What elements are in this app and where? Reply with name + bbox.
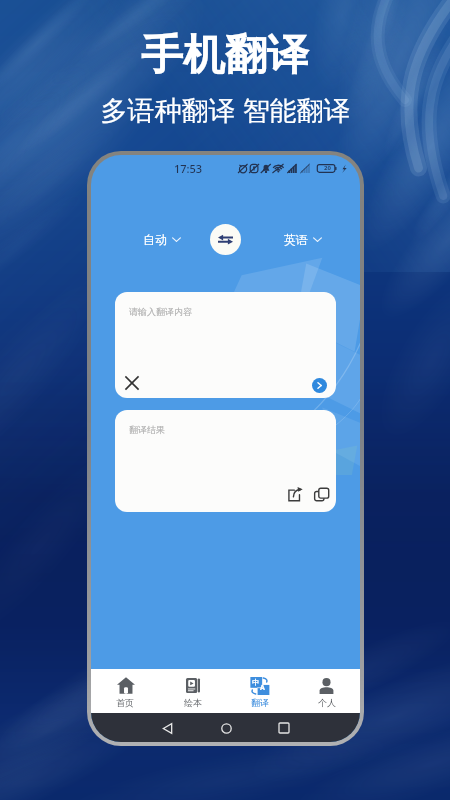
staticText: 17:53 — [174, 161, 203, 176]
button[interactable]: Home — [212, 714, 240, 742]
staticText: A — [260, 683, 265, 693]
button[interactable]: 绘本 — [159, 669, 226, 713]
staticText: 20 — [324, 164, 331, 172]
staticText: 请输入翻译内容 — [129, 306, 192, 317]
staticText: 多语种翻译 智能翻译 — [100, 91, 351, 128]
staticText: 英语 — [284, 232, 308, 247]
button[interactable]: 个人 — [293, 669, 360, 713]
button[interactable]: 英语 — [278, 227, 328, 252]
button[interactable]: Back — [153, 714, 181, 742]
staticText: 首页 — [116, 697, 134, 708]
staticText: 自动 — [143, 232, 167, 247]
staticText: 个人 — [318, 697, 336, 708]
button[interactable]: Recents — [270, 714, 298, 742]
button[interactable]: 首页 — [91, 669, 159, 713]
staticText: 手机翻译 — [141, 29, 309, 82]
staticText: 翻译 — [251, 697, 269, 708]
button[interactable]: Share — [283, 482, 307, 506]
button[interactable]: 中 — [226, 669, 293, 713]
staticText: 翻译结果 — [129, 424, 165, 435]
staticText: 绘本 — [184, 697, 202, 708]
button[interactable]: Swap languages — [210, 224, 241, 255]
button[interactable]: Clear — [119, 370, 145, 396]
button[interactable]: Copy — [310, 482, 334, 506]
staticText: 中 — [252, 678, 259, 687]
button[interactable]: 自动 — [137, 227, 187, 252]
button[interactable]: Translate — [312, 378, 327, 393]
